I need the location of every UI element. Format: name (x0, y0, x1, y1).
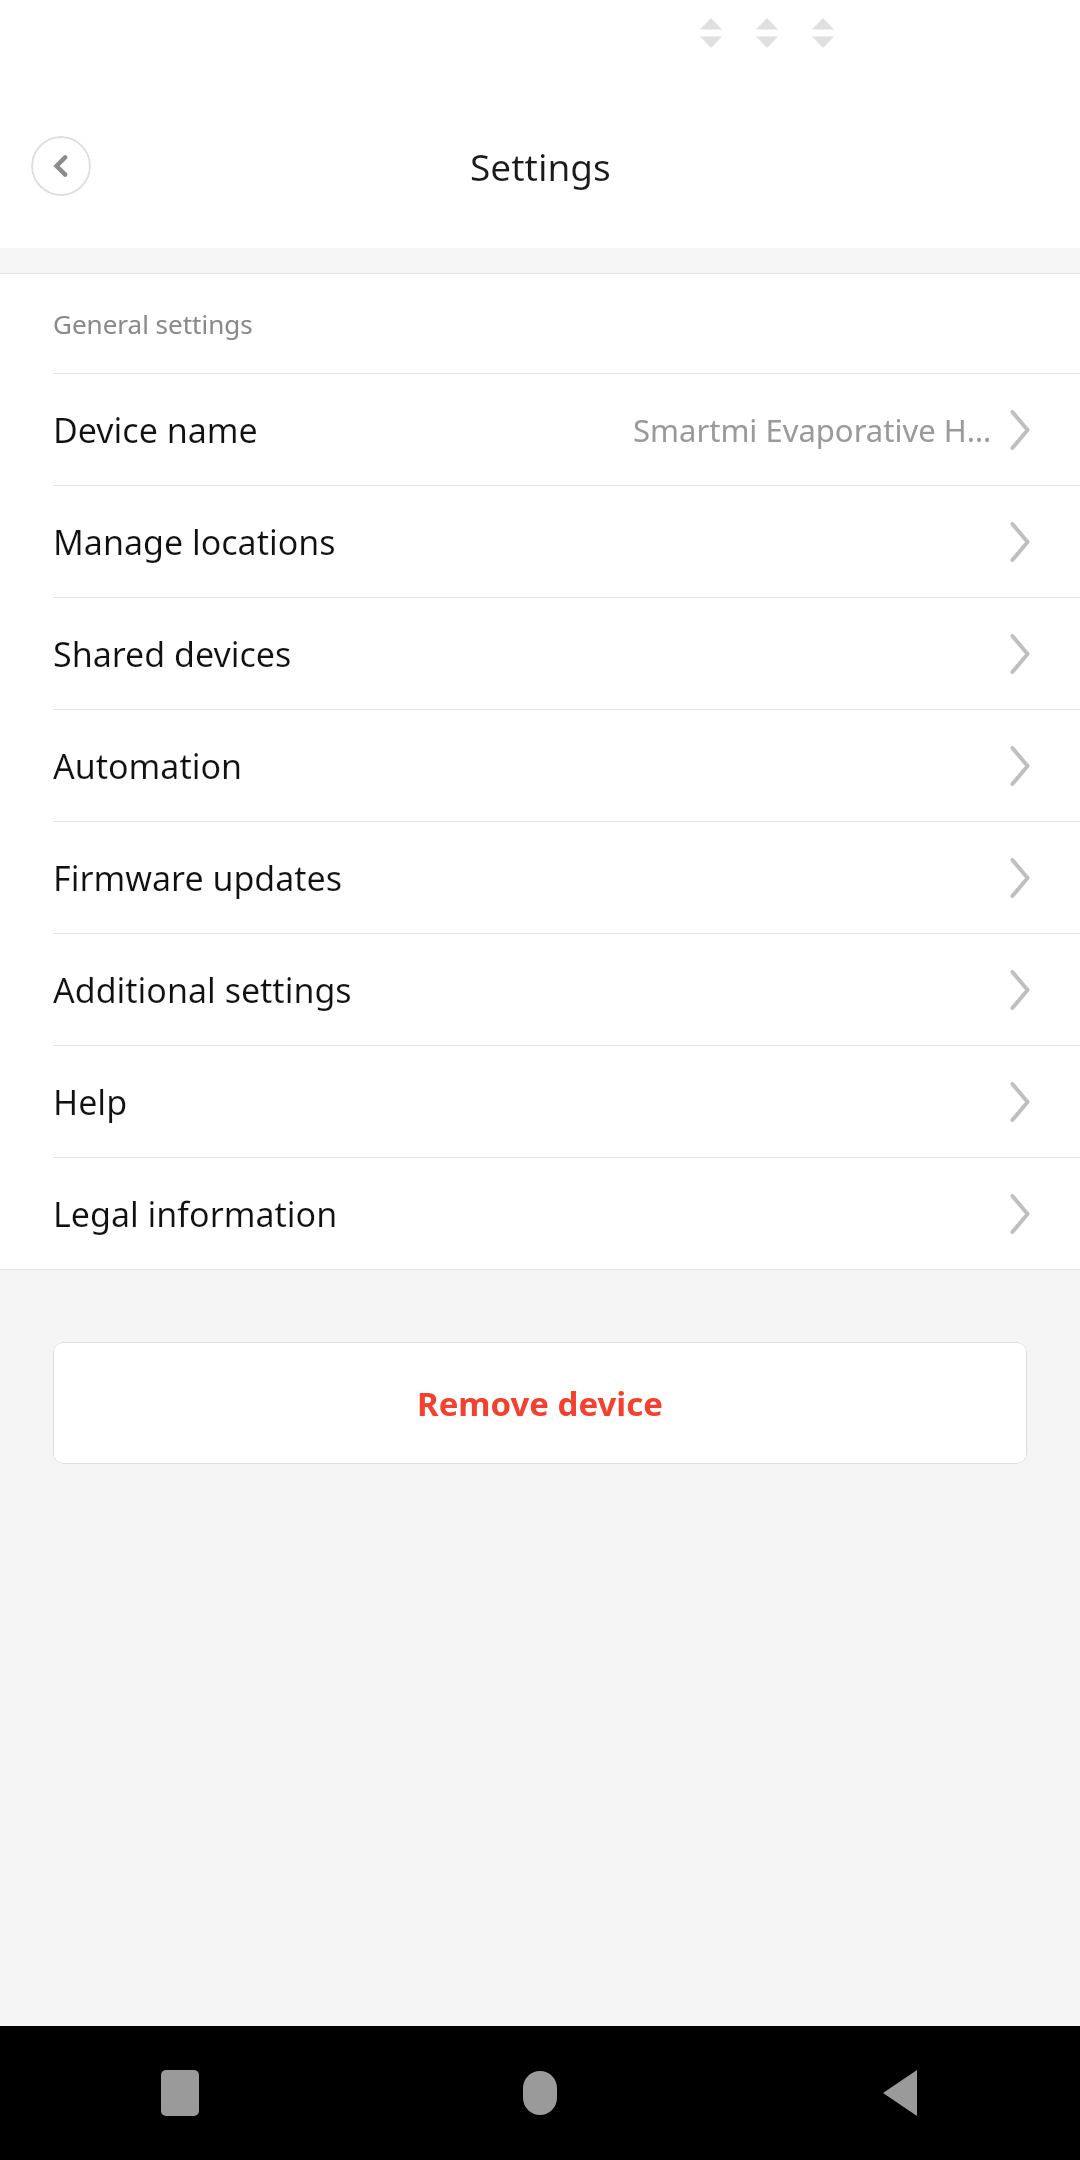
staticText: Remove device (417, 1381, 663, 1426)
staticText: Device name (53, 407, 258, 453)
button[interactable]: Manage locations (0, 486, 1080, 597)
button[interactable]: Back (840, 2033, 960, 2153)
staticText: General settings (53, 306, 253, 341)
button[interactable]: Automation (0, 710, 1080, 821)
button[interactable]: Additional settings (0, 934, 1080, 1045)
button[interactable]: Home (480, 2033, 600, 2153)
staticText: Smartmi Evaporative H… (633, 409, 992, 451)
staticText: Manage locations (53, 519, 336, 565)
button[interactable]: Device name (0, 374, 1080, 485)
button[interactable]: Help (0, 1046, 1080, 1157)
button[interactable]: Recents (120, 2033, 240, 2153)
staticText: Settings (470, 141, 611, 191)
staticText: Automation (53, 743, 243, 789)
staticText: Additional settings (53, 967, 352, 1013)
staticText: Firmware updates (53, 855, 343, 901)
button[interactable]: Remove device (53, 1342, 1027, 1464)
button[interactable]: Shared devices (0, 598, 1080, 709)
staticText: Shared devices (53, 631, 292, 677)
staticText: Legal information (53, 1191, 338, 1237)
staticText: Help (53, 1079, 128, 1125)
button[interactable]: Legal information (0, 1158, 1080, 1269)
button[interactable]: Firmware updates (0, 822, 1080, 933)
button[interactable]: Back (31, 136, 91, 196)
